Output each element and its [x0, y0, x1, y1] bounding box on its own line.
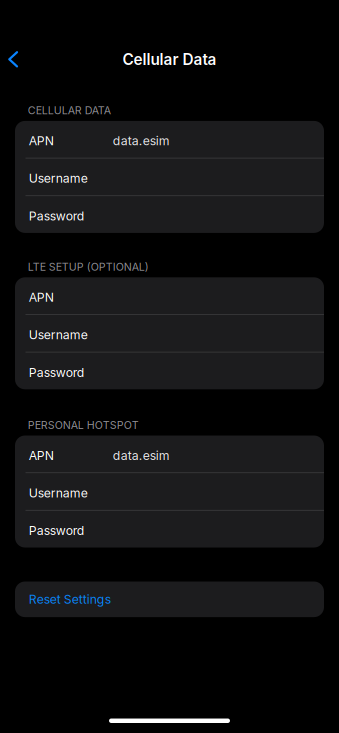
staticText: Cellular Data [122, 50, 216, 69]
staticText: Username [29, 171, 88, 186]
button[interactable]: Username [15, 315, 324, 352]
staticText: APN [29, 133, 54, 148]
staticText: Username [29, 486, 88, 500]
staticText: Password [29, 523, 85, 538]
button[interactable]: Reset Settings [15, 581, 324, 617]
button[interactable]: Password [15, 196, 324, 233]
button[interactable]: Password [15, 511, 324, 547]
staticText: Password [29, 365, 85, 380]
staticText: LTE SETUP (OPTIONAL) [28, 260, 149, 273]
button[interactable]: APN [15, 121, 324, 158]
button[interactable]: APN [15, 435, 324, 472]
staticText: data.esim [113, 448, 170, 463]
button[interactable]: Username [15, 473, 324, 510]
staticText: APN [29, 448, 54, 463]
staticText: Username [29, 327, 88, 342]
staticText: Password [29, 209, 85, 223]
staticText: APN [29, 290, 54, 305]
staticText: PERSONAL HOTSPOT [28, 419, 139, 431]
button[interactable]: APN [15, 277, 324, 314]
staticText: data.esim [113, 133, 170, 148]
staticText: CELLULAR DATA [28, 104, 111, 117]
staticText: Reset Settings [29, 592, 111, 607]
button[interactable]: Back [0, 41, 30, 78]
button[interactable]: Password [15, 352, 324, 389]
button[interactable]: Username [15, 158, 324, 195]
